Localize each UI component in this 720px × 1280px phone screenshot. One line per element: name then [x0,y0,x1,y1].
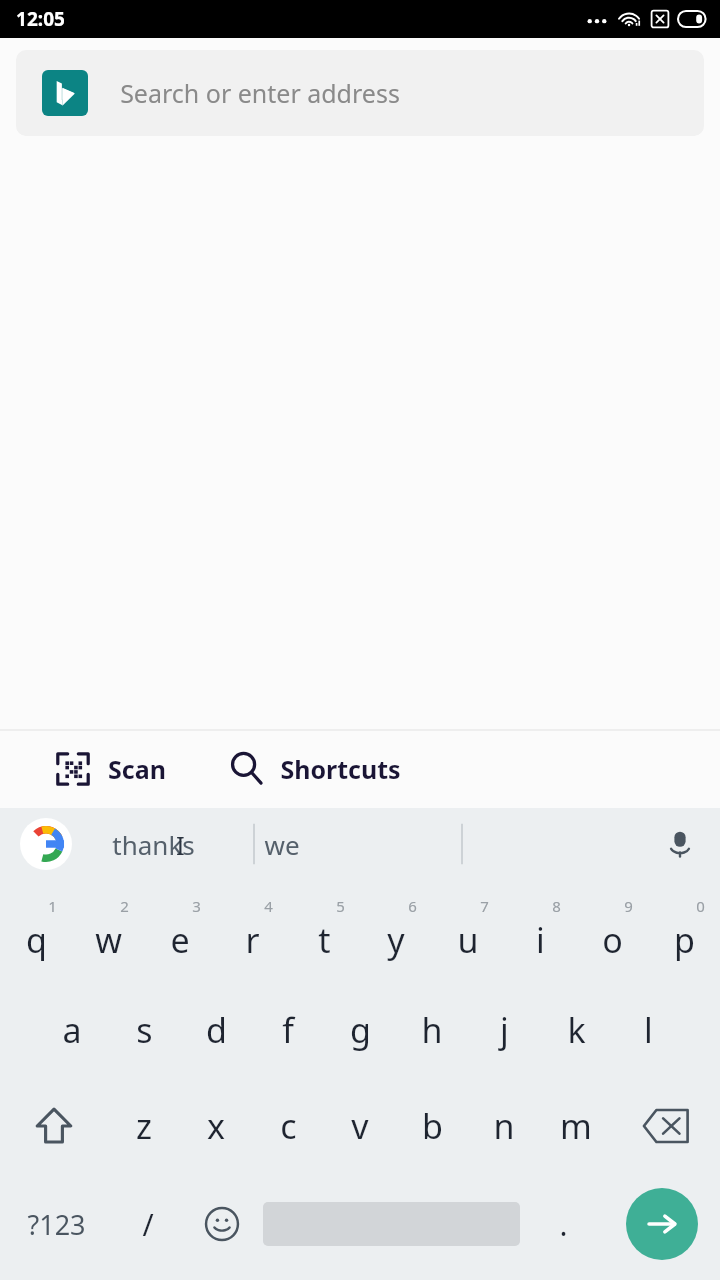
staticText: b [422,1103,443,1149]
staticText: z [136,1103,152,1149]
button[interactable]: Shortcuts [220,742,409,796]
staticText: Scan [108,752,166,786]
button[interactable]: n [468,1078,540,1174]
staticText: m [560,1103,592,1149]
staticText: 4 [264,896,273,916]
button[interactable]: g [324,982,396,1078]
button[interactable]: b [396,1078,468,1174]
staticText: e [170,917,190,963]
button[interactable]: d [180,982,252,1078]
staticText: d [206,1007,227,1053]
staticText: 9 [624,896,633,916]
staticText: . [559,1204,568,1245]
button[interactable]: s [108,982,180,1078]
button[interactable]: 5 [288,886,360,982]
staticText: k [567,1007,586,1053]
button[interactable]: Scan [46,742,174,796]
staticText: 2 [120,896,129,916]
staticText: 6 [408,896,417,916]
staticText: p [674,917,695,963]
staticText: v [351,1103,369,1149]
staticText: 5 [336,896,345,916]
staticText: s [136,1007,153,1053]
button[interactable]: Backspace [612,1078,720,1174]
button[interactable]: 8 [504,886,576,982]
button[interactable]: j [468,982,540,1078]
button[interactable]: 9 [576,886,648,982]
button[interactable]: 3 [144,886,216,982]
button[interactable]: Enter [626,1188,698,1260]
staticText: f [282,1007,294,1053]
staticText: t [318,917,331,963]
button[interactable]: . [522,1174,604,1274]
staticText: Search or enter address [120,76,400,110]
button[interactable]: Space [260,1174,522,1274]
staticText: 3 [192,896,201,916]
staticText: g [350,1007,371,1053]
staticText: 8 [552,896,561,916]
staticText: u [457,917,479,963]
staticText: 7 [480,896,489,916]
staticText: j [500,1007,509,1053]
staticText: 0 [696,896,705,916]
staticText: h [421,1007,443,1053]
button[interactable]: x [180,1078,252,1174]
staticText: l [644,1007,653,1053]
button[interactable]: c [252,1078,324,1174]
staticText: w [95,917,122,963]
button[interactable]: / [112,1174,184,1274]
button[interactable]: a [36,982,108,1078]
staticText: Shortcuts [280,752,401,786]
staticText: r [245,917,260,963]
button[interactable]: k [540,982,612,1078]
staticText: 12:05 [16,6,65,32]
staticText: / [142,1204,154,1245]
staticText: i [536,917,545,963]
button[interactable]: l [612,982,684,1078]
button[interactable]: Shift [0,1078,108,1174]
button[interactable]: Search or enter address [16,50,704,136]
button[interactable]: Google [20,818,72,870]
staticText: we [264,827,300,862]
button[interactable]: 1 [0,886,72,982]
button[interactable]: Emoji [184,1174,260,1274]
button[interactable]: 2 [72,886,144,982]
staticText: a [62,1007,82,1053]
button[interactable]: 6 [360,886,432,982]
button[interactable]: 0 [648,886,720,982]
button[interactable]: h [396,982,468,1078]
staticText: q [26,917,47,963]
staticText: I [176,827,185,862]
button[interactable]: 4 [216,886,288,982]
button[interactable]: z [108,1078,180,1174]
button[interactable]: 7 [432,886,504,982]
button[interactable]: Voice input [658,822,702,866]
button[interactable]: we [264,827,300,862]
button[interactable]: I [176,827,185,862]
button[interactable]: thanks [112,827,195,862]
staticText: c [280,1103,297,1149]
button[interactable]: v [324,1078,396,1174]
staticText: 1 [48,896,57,916]
staticText: thanks [112,827,195,862]
staticText: x [207,1103,225,1149]
staticText: o [602,917,623,963]
button[interactable]: ?123 [0,1174,112,1274]
staticText: y [387,917,405,963]
button[interactable]: f [252,982,324,1078]
button[interactable]: m [540,1078,612,1174]
staticText: ?123 [27,1206,86,1243]
staticText: n [493,1103,515,1149]
